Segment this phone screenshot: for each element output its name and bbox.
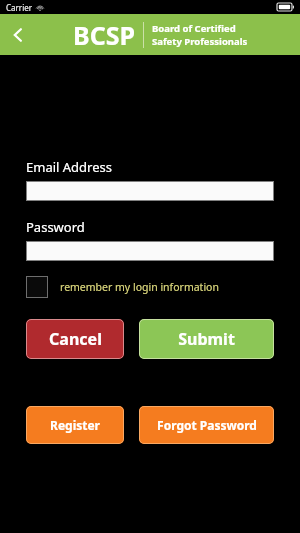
button[interactable]: [26, 181, 274, 201]
staticText: Password: [26, 218, 85, 236]
button[interactable]: Cancel: [26, 319, 124, 359]
staticText: Forgot Password: [157, 417, 257, 433]
staticText: Carrier: [6, 2, 33, 13]
button[interactable]: [26, 241, 274, 261]
staticText: Email Address: [26, 158, 112, 176]
button[interactable]: Register: [26, 406, 124, 444]
staticText: remember my login information: [60, 280, 219, 294]
staticText: Board of Certified: [152, 22, 236, 35]
staticText: Cancel: [49, 328, 102, 350]
staticText: BCSP: [73, 18, 135, 52]
button[interactable]: Submit: [139, 319, 274, 359]
staticText: Register: [50, 417, 100, 433]
button[interactable]: Forgot Password: [139, 406, 274, 444]
button[interactable]: Back: [0, 17, 36, 53]
button[interactable]: remember my login information: [26, 276, 274, 298]
staticText: Submit: [178, 328, 235, 350]
staticText: Safety Professionals: [152, 35, 248, 48]
